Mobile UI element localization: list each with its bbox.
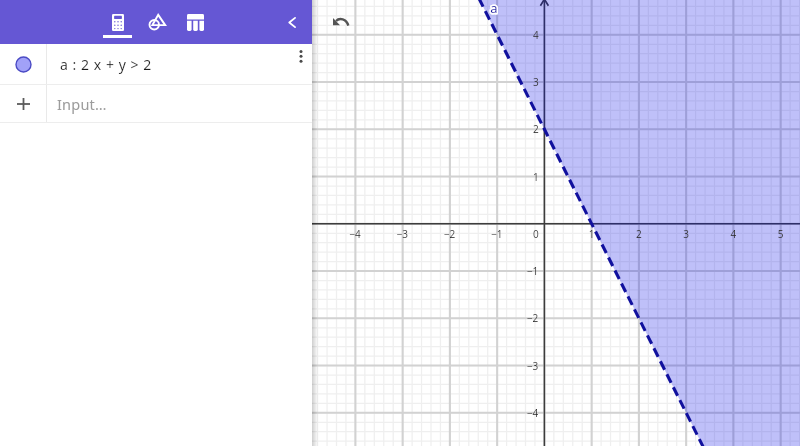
button[interactable]: Geometry tools [137,0,176,44]
staticText: Input… [57,94,107,114]
button[interactable]: Calculator [98,0,137,44]
button[interactable]: Undo [321,6,361,38]
button[interactable]: Collapse panel [272,0,312,44]
button[interactable]: Table of values [176,0,215,44]
staticText: a : 2 x + y > 2 [60,55,152,74]
button[interactable]: Toggle visibility of object a [0,44,46,84]
button[interactable]: More options [289,44,312,84]
button[interactable]: Toggle visibility of object a [0,44,312,84]
button[interactable]: Add input [0,85,312,122]
button[interactable]: Add input [0,85,46,122]
